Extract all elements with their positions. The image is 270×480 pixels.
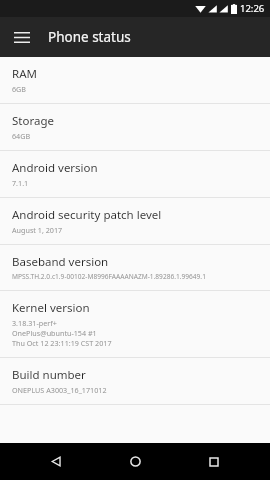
- button[interactable]: Android version: [0, 151, 270, 197]
- staticText: August 1, 2017: [12, 225, 63, 235]
- staticText: 64GB: [12, 131, 31, 141]
- staticText: ONEPLUS A3003_16_171012: [12, 385, 107, 395]
- button[interactable]: Baseband version: [0, 245, 270, 290]
- staticText: 3.18.31-perf+: [12, 318, 57, 328]
- staticText: OnePlus@ubuntu-154 #1: [12, 328, 97, 338]
- staticText: Phone status: [48, 28, 131, 46]
- staticText: Android version: [12, 160, 98, 176]
- staticText: 12:26: [240, 2, 265, 15]
- staticText: Build number: [12, 367, 86, 383]
- button[interactable]: Kernel version: [0, 291, 270, 357]
- button[interactable]: Home: [112, 443, 158, 480]
- button[interactable]: Android security patch level: [0, 198, 270, 244]
- button[interactable]: Storage: [0, 104, 270, 150]
- button[interactable]: RAM: [0, 57, 270, 103]
- staticText: MPSS.TH.2.0.c1.9-00102-M8996FAAAANAZM-1.…: [12, 272, 206, 281]
- button[interactable]: Recent apps: [191, 443, 237, 480]
- staticText: Baseband version: [12, 254, 109, 270]
- staticText: Android security patch level: [12, 207, 162, 223]
- staticText: RAM: [12, 66, 37, 82]
- staticText: Kernel version: [12, 300, 90, 316]
- staticText: 7.1.1: [12, 178, 29, 188]
- button[interactable]: Open navigation menu: [8, 23, 36, 51]
- staticText: 6GB: [12, 84, 27, 94]
- staticText: Storage: [12, 113, 54, 129]
- button[interactable]: Back: [33, 443, 79, 480]
- staticText: Thu Oct 12 23:11:19 CST 2017: [12, 338, 112, 348]
- button[interactable]: Build number: [0, 358, 270, 404]
